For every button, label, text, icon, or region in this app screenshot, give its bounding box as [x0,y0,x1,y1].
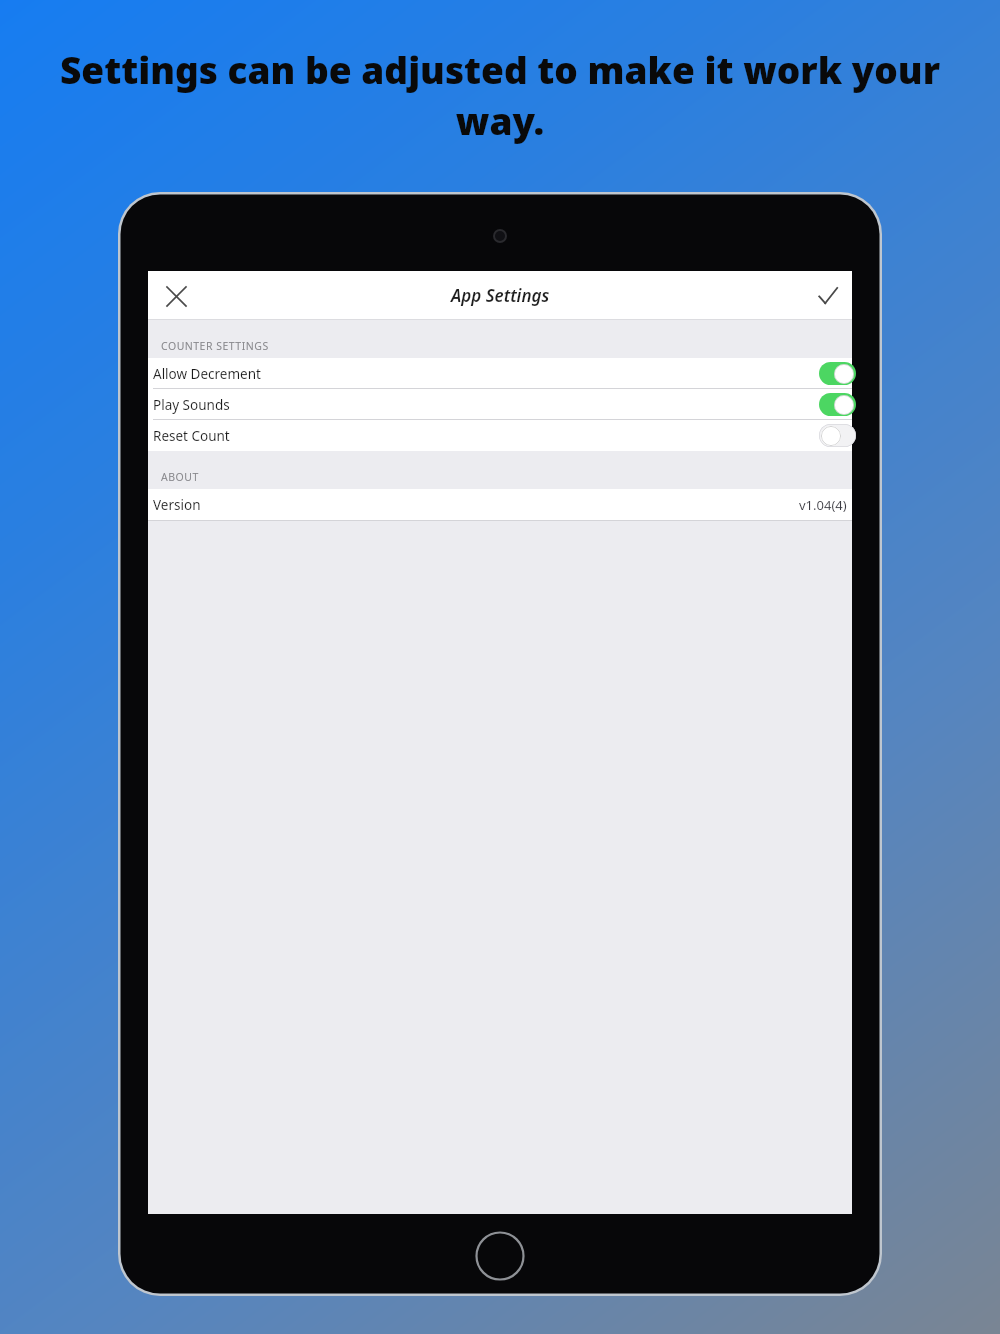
staticText: Reset Count [153,427,230,445]
staticText: v1.04(4) [799,496,847,514]
staticText: Play Sounds [153,396,230,414]
staticText: ABOUT [161,470,199,484]
button[interactable]: Version [148,489,852,520]
button[interactable]: Done [806,274,850,318]
button[interactable]: Reset Count [148,420,852,451]
staticText: COUNTER SETTINGS [161,339,269,353]
button[interactable]: Play Sounds [148,389,852,420]
button[interactable]: On [819,393,856,416]
staticText: App Settings [451,284,550,307]
button[interactable]: Close [154,274,198,318]
staticText: Settings can be adjusted to make it work… [56,44,944,146]
button[interactable]: On [819,362,856,385]
staticText: Allow Decrement [153,365,261,383]
staticText: Version [153,496,201,514]
button[interactable]: Off [819,424,856,447]
button[interactable]: Allow Decrement [148,358,852,389]
